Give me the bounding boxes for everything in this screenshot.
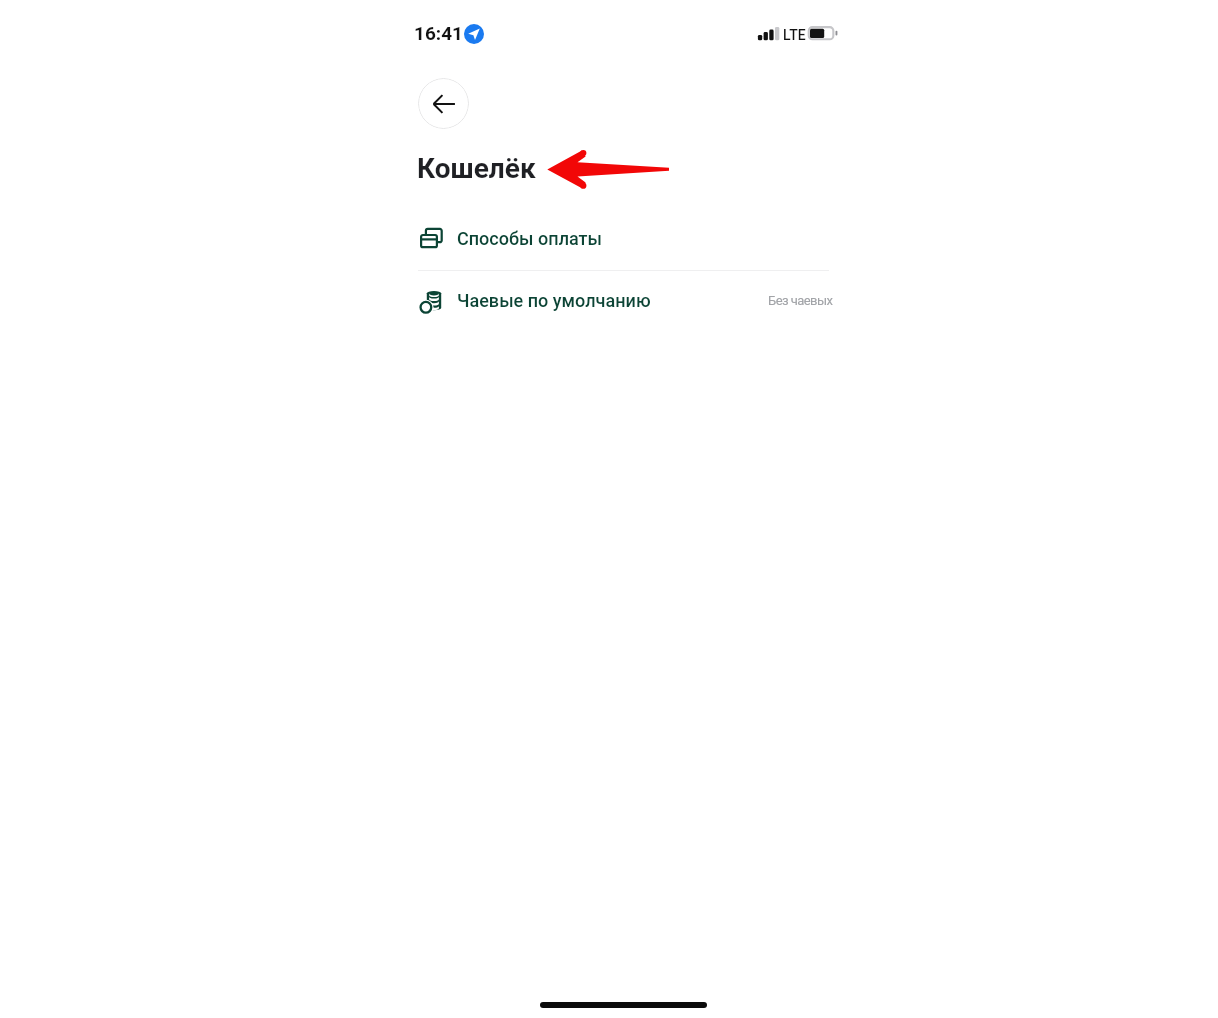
- staticText: LTE: [783, 27, 806, 43]
- staticText: Способы оплаты: [457, 228, 603, 249]
- staticText: 16:41: [414, 22, 463, 44]
- button[interactable]: Чаевые по умолчанию: [418, 278, 829, 330]
- staticText: Без чаевых: [768, 293, 833, 308]
- button[interactable]: Back: [418, 78, 469, 129]
- staticText: Кошелёк: [417, 152, 536, 185]
- staticText: Чаевые по умолчанию: [457, 290, 651, 311]
- button[interactable]: Способы оплаты: [418, 214, 829, 266]
